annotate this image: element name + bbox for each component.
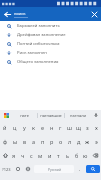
- button[interactable]: .: [75, 162, 85, 176]
- staticText: т: [57, 152, 60, 159]
- staticText: н: [50, 124, 54, 131]
- button[interactable]: ф: [0, 134, 10, 148]
- staticText: ф: [3, 138, 8, 145]
- button[interactable]: нагнали: [65, 110, 91, 120]
- button[interactable]: ж: [83, 134, 92, 148]
- button[interactable]: Emoji: [13, 162, 23, 176]
- button[interactable]: к: [29, 120, 38, 134]
- button[interactable]: д: [74, 134, 83, 148]
- button[interactable]: ю: [81, 148, 90, 162]
- button[interactable]: Backspace: [90, 148, 101, 162]
- staticText: к: [32, 124, 35, 131]
- staticText: п: [41, 138, 45, 145]
- staticText: д: [77, 138, 81, 145]
- button[interactable]: Русский: [34, 165, 74, 173]
- staticText: й: [3, 124, 7, 131]
- button[interactable]: б: [72, 148, 81, 162]
- staticText: у: [23, 124, 26, 131]
- staticText: Бармалей заполнить: [17, 23, 60, 29]
- button[interactable]: э: [92, 134, 101, 148]
- staticText: е: [41, 124, 45, 131]
- button[interactable]: й: [0, 120, 10, 134]
- button[interactable]: н: [47, 120, 56, 134]
- staticText: л: [68, 138, 72, 145]
- button[interactable]: Clear: [87, 7, 101, 21]
- button[interactable]: п: [38, 134, 47, 148]
- staticText: ж: [85, 138, 90, 145]
- staticText: с: [30, 152, 33, 159]
- staticText: з: [86, 124, 89, 131]
- button[interactable]: Shift: [0, 148, 10, 162]
- button[interactable]: е: [38, 120, 47, 134]
- staticText: ы: [13, 138, 18, 145]
- button[interactable]: Риск заполнен: [0, 48, 101, 57]
- button[interactable]: Понтий избыточным: [0, 39, 101, 48]
- staticText: Дрейфовал заполнение: [17, 32, 66, 38]
- button[interactable]: ш: [65, 120, 74, 134]
- button[interactable]: в: [20, 134, 29, 148]
- staticText: о: [59, 138, 63, 145]
- staticText: и: [48, 152, 52, 159]
- button[interactable]: Общего заполнения: [0, 57, 101, 66]
- button[interactable]: р: [47, 134, 56, 148]
- button[interactable]: щ: [74, 120, 83, 134]
- staticText: ?123: [2, 167, 11, 172]
- staticText: ш: [67, 124, 72, 131]
- staticText: ч: [21, 152, 25, 159]
- button[interactable]: я: [10, 148, 18, 162]
- staticText: г: [59, 124, 62, 131]
- staticText: р: [50, 138, 54, 145]
- button[interactable]: Дрейфовал заполнение: [0, 30, 101, 39]
- button[interactable]: о: [56, 134, 65, 148]
- button[interactable]: Бармалей заполнить: [0, 21, 101, 30]
- staticText: я: [12, 152, 16, 159]
- button[interactable]: нагнавшие: [38, 110, 64, 120]
- button[interactable]: л: [65, 134, 74, 148]
- staticText: Общего заполнения: [17, 59, 59, 65]
- staticText: нагнали: [70, 113, 86, 118]
- button[interactable]: ч: [18, 148, 27, 162]
- staticText: нате: [20, 113, 29, 118]
- button[interactable]: г: [56, 120, 65, 134]
- staticText: м: [38, 152, 43, 159]
- button[interactable]: ь: [63, 148, 72, 162]
- button[interactable]: ы: [10, 134, 20, 148]
- staticText: Понтий избыточным: [17, 41, 60, 47]
- staticText: щ: [76, 124, 81, 131]
- staticText: ь: [66, 152, 69, 159]
- staticText: х: [95, 124, 98, 131]
- staticText: Русский: [48, 167, 61, 172]
- button[interactable]: з: [83, 120, 92, 134]
- staticText: б: [75, 152, 79, 159]
- staticText: поиск: [14, 11, 26, 16]
- button[interactable]: х: [92, 120, 101, 134]
- button[interactable]: ц: [10, 120, 20, 134]
- button[interactable]: т: [54, 148, 63, 162]
- button[interactable]: Google: [0, 110, 12, 120]
- staticText: э: [95, 138, 98, 145]
- button[interactable]: поиск: [14, 7, 87, 21]
- button[interactable]: Back: [0, 7, 14, 21]
- button[interactable]: с: [27, 148, 36, 162]
- staticText: ю: [83, 152, 88, 159]
- button[interactable]: у: [20, 120, 29, 134]
- button[interactable]: Change language: [23, 162, 33, 176]
- staticText: ц: [13, 124, 17, 131]
- button[interactable]: а: [29, 134, 38, 148]
- staticText: нагнавшие: [40, 113, 62, 118]
- button[interactable]: и: [45, 148, 54, 162]
- button[interactable]: нате: [12, 110, 37, 120]
- staticText: в: [23, 138, 27, 145]
- staticText: .: [79, 166, 81, 173]
- staticText: а: [32, 138, 36, 145]
- button[interactable]: Voice input: [91, 110, 101, 120]
- button[interactable]: м: [36, 148, 45, 162]
- button[interactable]: ?123: [0, 162, 13, 176]
- button[interactable]: Search: [86, 165, 100, 173]
- staticText: Риск заполнен: [17, 50, 47, 56]
